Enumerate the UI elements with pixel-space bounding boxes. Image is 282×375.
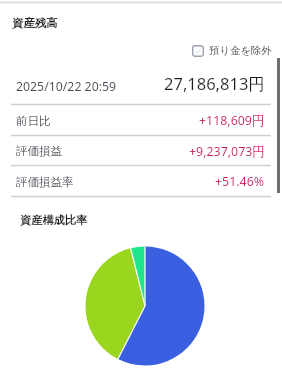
- button[interactable]: 評価損益率: [0, 166, 282, 197]
- staticText: +9,237,073円: [189, 143, 265, 160]
- staticText: 預り金を除外: [209, 44, 272, 57]
- staticText: +51.46%: [215, 173, 265, 190]
- button[interactable]: 評価損益: [0, 136, 282, 166]
- staticText: 前日比: [16, 114, 51, 128]
- button[interactable]: 前日比: [0, 105, 282, 136]
- button[interactable]: 2025/10/22 20:59: [0, 67, 282, 105]
- staticText: 資産残高: [12, 16, 58, 30]
- button[interactable]: 預り金を除外: [192, 44, 272, 57]
- staticText: 資産構成比率: [20, 213, 88, 227]
- staticText: 2025/10/22 20:59: [16, 78, 117, 95]
- staticText: 27,186,813円: [164, 72, 265, 95]
- staticText: 評価損益: [16, 144, 62, 158]
- staticText: +118,609円: [199, 112, 265, 129]
- staticText: 評価損益率: [16, 175, 74, 189]
